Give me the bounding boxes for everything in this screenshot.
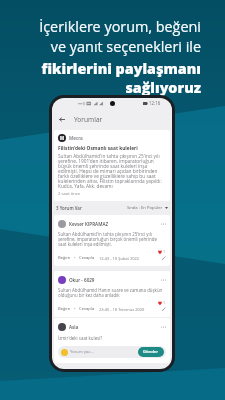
staticText: sağlıyoruz (125, 78, 201, 97)
button[interactable]: Düzenle (162, 307, 166, 311)
staticText: Filistin'deki Osmanlı saat kuleleri (58, 145, 138, 152)
staticText: Asla (69, 324, 79, 330)
staticText: 3 Yorum Var (56, 205, 82, 211)
button[interactable]: Geri (56, 113, 68, 125)
staticText: 12:43 - 10 Şubat 2022 (99, 256, 140, 261)
staticText: 2 saat önce (58, 191, 81, 197)
button[interactable]: Okur - 6029 (54, 271, 170, 317)
staticText: 1 (163, 300, 166, 305)
staticText: Sırala : En Popüler (127, 205, 163, 211)
staticText: Mecra (69, 135, 83, 141)
staticText: Sultan Abdülhamid'in tahta çıkışının 25'… (58, 153, 166, 189)
staticText: • (74, 306, 76, 312)
button[interactable]: Sırala : En Popüler (127, 205, 168, 211)
staticText: Okur - 6029 (69, 277, 95, 283)
button[interactable]: Beğen (58, 255, 71, 261)
button[interactable]: Beğen (58, 306, 71, 312)
staticText: Sultan Abdülhamid'in tahta çıkışının 25'… (58, 231, 166, 248)
staticText: Sultan Abdülhamid Hanın suare ve zamana … (58, 287, 166, 299)
button[interactable]: Kevser KIPRAMAZ (54, 215, 170, 266)
staticText: • (74, 255, 76, 261)
button[interactable]: Daha fazla (160, 221, 166, 227)
staticText: ve yanıt seçenekleri ile (50, 37, 201, 57)
button[interactable]: M (54, 130, 170, 201)
staticText: fikirlerini paylaşmanı (41, 59, 201, 78)
staticText: Yorumlar (74, 115, 103, 124)
staticText: M (60, 135, 65, 141)
button[interactable]: Gönder (138, 347, 164, 357)
staticText: Gönder (143, 349, 159, 355)
button[interactable]: Düzenle (162, 256, 166, 260)
staticText: 1 (163, 249, 166, 254)
staticText: 12:16 (149, 100, 161, 106)
staticText: İzmir'deki saat kulesi? (58, 335, 103, 341)
button[interactable]: Cevapla (79, 306, 95, 312)
staticText: İçeriklere yorum, beğeni (39, 17, 201, 37)
button[interactable]: Cevapla (79, 255, 95, 261)
staticText: Kevser KIPRAMAZ (69, 221, 109, 227)
button[interactable]: Daha fazla (160, 277, 166, 283)
button[interactable]: Daha fazla (160, 324, 166, 330)
staticText: 23:45 - 18 Temmuz 2020 (99, 307, 145, 312)
staticText: Yorum yaz... (70, 349, 94, 355)
